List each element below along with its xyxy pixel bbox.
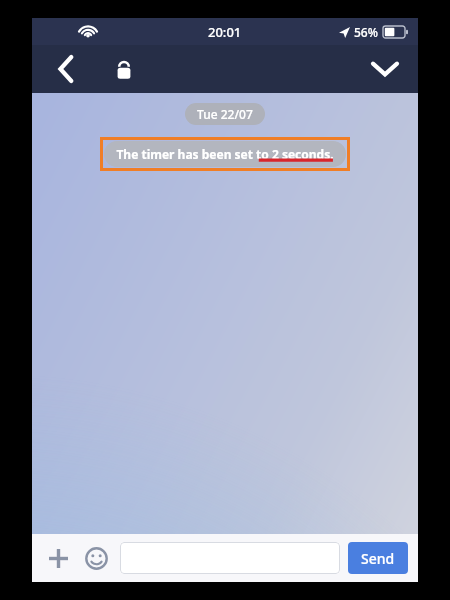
button[interactable]: Send	[348, 542, 408, 574]
button[interactable]	[120, 542, 340, 574]
button[interactable]: Back	[46, 49, 86, 89]
button[interactable]: Tue 22/07	[185, 103, 265, 125]
staticText: 20:01	[208, 23, 242, 41]
button[interactable]: Emoji	[80, 542, 112, 574]
staticText: 56%	[354, 24, 378, 40]
staticText: Send	[361, 549, 395, 568]
button[interactable]: The timer has been set to 2 seconds.	[104, 141, 346, 167]
button[interactable]: Encrypted	[104, 49, 144, 89]
staticText: Tue 22/07	[197, 106, 253, 122]
button[interactable]: Expand	[364, 48, 406, 90]
button[interactable]: Attach	[42, 542, 74, 574]
staticText: The timer has been set to 2 seconds.	[116, 146, 334, 162]
